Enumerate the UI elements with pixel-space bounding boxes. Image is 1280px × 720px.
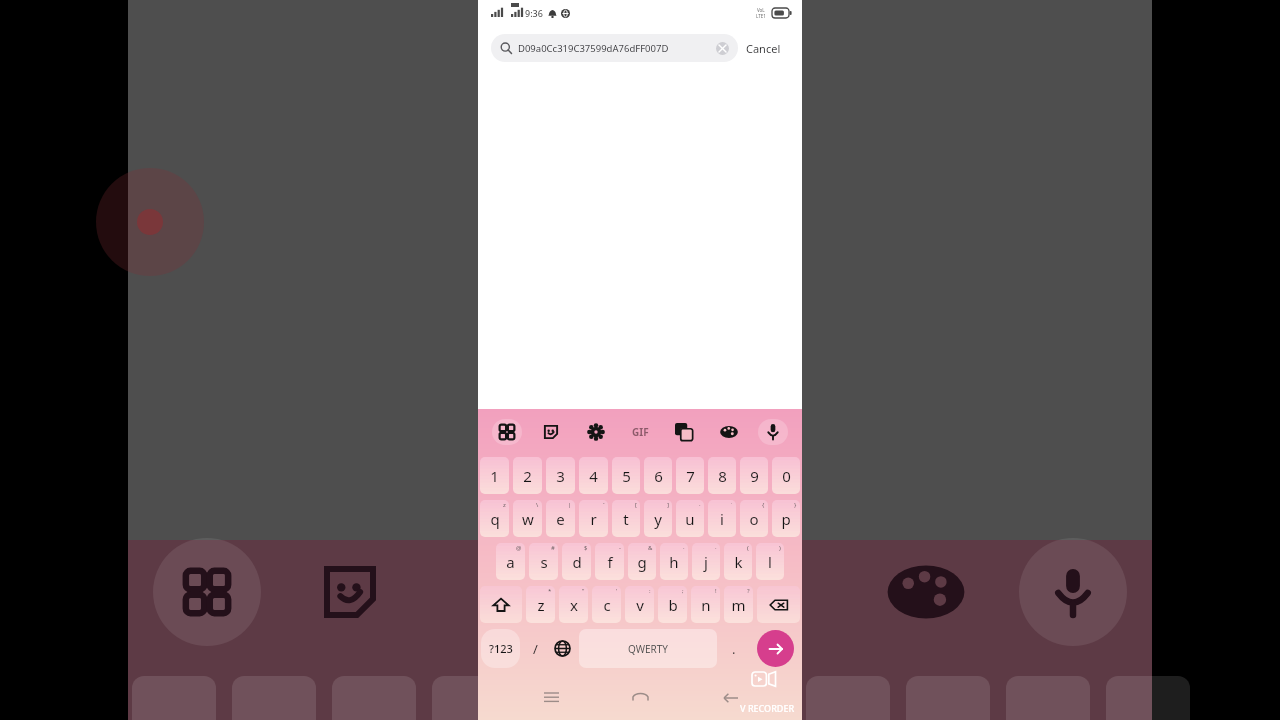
staticText: · (699, 501, 701, 509)
staticText: d (572, 552, 582, 572)
button[interactable]: k (724, 543, 752, 580)
staticText: z (537, 595, 545, 615)
button[interactable]: z (526, 586, 555, 623)
staticText: ) (779, 544, 781, 552)
staticText: t (623, 509, 629, 529)
button[interactable]: r (579, 500, 608, 537)
staticText: g (637, 552, 647, 572)
staticText: 7 (686, 466, 695, 486)
staticText: D09a0Cc319C37599dA76dFF007D (518, 42, 669, 55)
button[interactable]: 7 (676, 457, 704, 494)
staticText: # (551, 544, 555, 552)
button[interactable]: l (756, 543, 784, 580)
button[interactable]: c (592, 586, 621, 623)
button[interactable]: Switch language (548, 629, 577, 668)
staticText: ` (603, 501, 605, 509)
button[interactable]: Clear text (716, 42, 729, 55)
button[interactable]: 8 (708, 457, 736, 494)
button[interactable]: m (724, 586, 753, 623)
button[interactable]: Back (713, 679, 747, 713)
button[interactable]: 1 (480, 457, 509, 494)
button[interactable]: 9 (740, 457, 768, 494)
staticText: b (668, 595, 678, 615)
button[interactable]: Menu (492, 419, 522, 445)
button[interactable]: 6 (644, 457, 672, 494)
staticText: w (522, 509, 534, 529)
staticText: $ (584, 544, 588, 552)
button[interactable]: Voice input (758, 419, 788, 445)
button[interactable]: Recent apps (534, 679, 568, 713)
button[interactable]: 4 (579, 457, 608, 494)
button[interactable]: D09a0Cc319C37599dA76dFF007D (491, 34, 738, 62)
staticText: l (768, 552, 772, 572)
button[interactable]: Shift (480, 586, 522, 623)
button[interactable]: h (660, 543, 688, 580)
staticText: * (548, 587, 552, 595)
button[interactable]: g (628, 543, 656, 580)
button[interactable]: QWERTY (579, 629, 717, 668)
button[interactable]: Enter (757, 630, 794, 667)
staticText: j (704, 552, 708, 572)
button[interactable]: a (496, 543, 525, 580)
button[interactable]: o (740, 500, 768, 537)
staticText: @ (516, 544, 522, 552)
button[interactable]: p (772, 500, 800, 537)
staticText: [ (635, 501, 637, 509)
staticText: u (685, 509, 695, 529)
staticText: n (701, 595, 711, 615)
button[interactable]: 2 (513, 457, 542, 494)
staticText: { (762, 501, 765, 509)
button[interactable]: Theme (714, 419, 744, 445)
staticText: · (715, 544, 717, 552)
staticText: - (619, 544, 621, 552)
staticText: f (607, 552, 613, 572)
button[interactable]: / (523, 629, 548, 668)
staticText: | (568, 501, 572, 509)
button[interactable]: y (644, 500, 672, 537)
staticText: 6 (654, 466, 663, 486)
staticText: h (669, 552, 679, 572)
button[interactable]: v (625, 586, 654, 623)
button[interactable]: f (595, 543, 624, 580)
button[interactable]: w (513, 500, 542, 537)
staticText: 0 (782, 466, 791, 486)
button[interactable]: Settings (581, 419, 611, 445)
staticText: k (734, 552, 743, 572)
staticText: c (603, 595, 611, 615)
button[interactable]: 3 (546, 457, 575, 494)
button[interactable]: GIF (625, 419, 655, 445)
staticText: 2 (523, 466, 532, 486)
button[interactable]: i (708, 500, 736, 537)
button[interactable]: ?123 (481, 629, 520, 668)
button[interactable]: e (546, 500, 575, 537)
staticText: x (570, 595, 578, 615)
button[interactable]: Translate (669, 419, 699, 445)
staticText: / (533, 640, 538, 658)
staticText: s (540, 552, 548, 572)
staticText: & (648, 544, 653, 552)
button[interactable]: n (691, 586, 720, 623)
staticText: VoL (757, 7, 765, 13)
staticText: ( (747, 544, 749, 552)
button[interactable]: Stickers (536, 419, 566, 445)
button[interactable]: s (529, 543, 558, 580)
staticText: " (582, 587, 585, 595)
button[interactable]: Home (623, 679, 657, 713)
button[interactable]: b (658, 586, 687, 623)
staticText: 4 (589, 466, 598, 486)
button[interactable]: u (676, 500, 704, 537)
staticText: 5 (622, 466, 631, 486)
staticText: v (636, 595, 644, 615)
button[interactable]: Cancel (738, 36, 789, 61)
button[interactable]: 5 (612, 457, 640, 494)
button[interactable]: 0 (772, 457, 800, 494)
button[interactable]: x (559, 586, 588, 623)
button[interactable]: d (562, 543, 591, 580)
button[interactable]: j (692, 543, 720, 580)
button[interactable]: q (480, 500, 509, 537)
button[interactable]: Backspace (757, 586, 800, 623)
staticText: ˙ (731, 501, 733, 509)
button[interactable]: . (719, 629, 748, 668)
staticText: r (590, 509, 597, 529)
button[interactable]: t (612, 500, 640, 537)
